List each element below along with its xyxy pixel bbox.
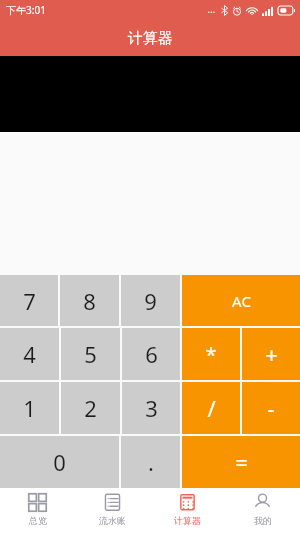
staticText: 9 — [144, 286, 157, 316]
staticText: / — [207, 393, 216, 423]
button[interactable]: 我的 — [225, 488, 300, 533]
staticText: 总览 — [29, 515, 47, 526]
staticText: 6 — [145, 339, 158, 369]
other: 计算器 — [178, 493, 197, 512]
staticText: - — [267, 393, 275, 423]
button[interactable]: 7 — [0, 275, 58, 326]
staticText: 1 — [23, 393, 36, 423]
button[interactable]: 总览 — [0, 488, 75, 533]
staticText: 8 — [83, 286, 96, 316]
button[interactable]: 5 — [61, 328, 120, 380]
button[interactable]: 2 — [61, 382, 120, 434]
staticText: 3 — [145, 393, 158, 423]
button[interactable]: 计算器 — [150, 488, 225, 533]
button[interactable]: 9 — [121, 275, 180, 326]
staticText: 7 — [23, 286, 36, 316]
button[interactable]: 1 — [0, 382, 59, 434]
button[interactable]: * — [182, 328, 240, 380]
staticText: * — [205, 341, 217, 368]
staticText: = — [235, 447, 248, 477]
staticText: 下午3:01 — [6, 3, 46, 17]
button[interactable]: - — [242, 382, 300, 434]
button[interactable]: AC — [182, 275, 300, 326]
button[interactable]: 0 — [0, 436, 119, 488]
other: 总览 — [28, 493, 47, 512]
staticText: AC — [232, 291, 251, 311]
staticText: 我的 — [254, 515, 272, 526]
staticText: 0 — [53, 447, 66, 477]
button[interactable]: . — [121, 436, 180, 488]
staticText: 计算器 — [174, 515, 201, 526]
button[interactable]: = — [182, 436, 300, 488]
button[interactable]: 6 — [122, 328, 180, 380]
staticText: + — [265, 339, 278, 369]
button[interactable]: / — [182, 382, 240, 434]
other: 我的 — [253, 493, 272, 512]
staticText: 5 — [84, 339, 97, 369]
other: 流水账 — [103, 493, 122, 512]
button[interactable]: 3 — [122, 382, 180, 434]
button[interactable]: 4 — [0, 328, 59, 380]
button[interactable]: + — [242, 328, 300, 380]
button[interactable]: 8 — [60, 275, 119, 326]
staticText: 计算器 — [128, 29, 173, 48]
staticText: . — [148, 447, 154, 477]
staticText: 2 — [84, 393, 97, 423]
staticText: 流水账 — [99, 515, 126, 526]
button[interactable]: 流水账 — [75, 488, 150, 533]
staticText: 4 — [23, 339, 36, 369]
